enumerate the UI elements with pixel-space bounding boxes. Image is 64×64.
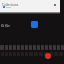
button[interactable] [61, 45, 64, 50]
button[interactable]: Open item [31, 21, 38, 28]
button[interactable] [57, 45, 60, 50]
button[interactable] [5, 45, 8, 50]
button[interactable]: Record [45, 53, 51, 59]
button[interactable] [45, 45, 48, 50]
button[interactable] [29, 45, 32, 50]
button[interactable] [44, 52, 48, 56]
button[interactable] [53, 45, 56, 50]
button[interactable] [37, 45, 40, 50]
button[interactable] [49, 45, 52, 50]
button[interactable] [41, 45, 44, 50]
button[interactable] [33, 45, 36, 50]
button[interactable] [49, 52, 53, 56]
button[interactable] [21, 45, 24, 50]
button[interactable] [25, 45, 28, 50]
staticText: Collections [2, 3, 19, 7]
button[interactable] [17, 45, 20, 50]
button[interactable] [13, 45, 16, 50]
staticText: G Gr [1, 23, 11, 29]
button[interactable] [9, 45, 12, 50]
